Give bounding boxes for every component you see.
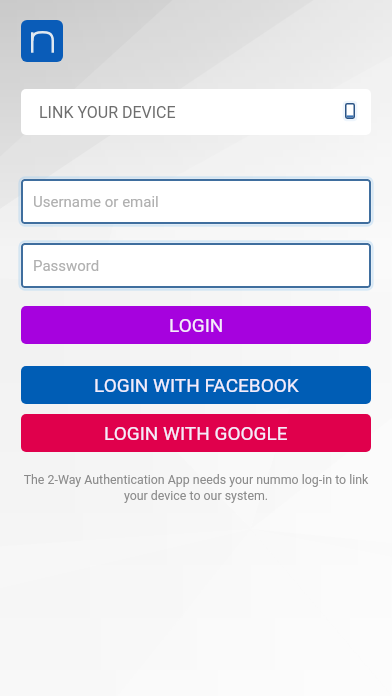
button[interactable]: LINK YOUR DEVICE: [21, 89, 371, 135]
staticText: LOGIN: [169, 314, 224, 336]
button[interactable]: Username or email: [21, 179, 371, 224]
staticText: Password: [33, 257, 100, 275]
staticText: LINK YOUR DEVICE: [39, 103, 176, 122]
other: Phone: [345, 103, 355, 119]
button[interactable]: LOGIN WITH FACEBOOK: [21, 366, 371, 404]
button[interactable]: LOGIN WITH GOOGLE: [21, 414, 371, 452]
button[interactable]: Password: [21, 243, 371, 288]
staticText: LOGIN WITH FACEBOOK: [94, 374, 299, 396]
button[interactable]: App logo: [21, 20, 63, 62]
staticText: LOGIN WITH GOOGLE: [104, 422, 288, 444]
staticText: Username or email: [33, 193, 159, 211]
button[interactable]: LOGIN: [21, 306, 371, 344]
staticText: The 2-Way Authentication App needs your …: [12, 472, 380, 503]
